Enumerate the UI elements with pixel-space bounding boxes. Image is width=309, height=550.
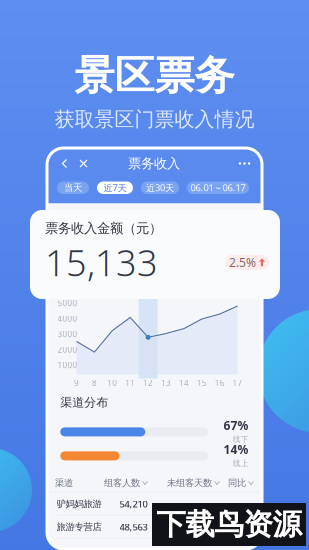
staticText: 67% xyxy=(223,417,248,433)
staticText: 10 xyxy=(107,377,117,388)
staticText: 票务收入金额（元） xyxy=(45,220,162,236)
staticText: 下载鸟资源 xyxy=(156,506,301,542)
button[interactable]: More xyxy=(237,156,251,170)
staticText: 线上 xyxy=(232,458,248,468)
staticText: 渠道分布 xyxy=(60,395,108,410)
staticText: 54,210 xyxy=(119,498,147,510)
button[interactable]: 未组客天数 xyxy=(167,477,219,489)
staticText: 9 xyxy=(74,377,79,388)
staticText: 15,133 xyxy=(45,238,158,286)
button[interactable]: Close xyxy=(76,156,90,170)
staticText: 旅游专营店 xyxy=(56,521,101,533)
button[interactable]: 同比 xyxy=(228,477,253,489)
staticText: 线下 xyxy=(232,434,248,444)
staticText: 14% xyxy=(223,441,248,457)
staticText: 11 xyxy=(125,377,135,388)
button[interactable]: 驴妈妈旅游 xyxy=(48,492,260,515)
staticText: 2.5% xyxy=(229,254,256,270)
staticText: 13 xyxy=(161,377,171,388)
button[interactable]: Back xyxy=(57,156,71,170)
staticText: 驴妈妈旅游 xyxy=(56,498,101,510)
staticText: 15 xyxy=(197,377,207,388)
staticText: 5000 xyxy=(57,298,77,308)
staticText: 获取景区门票收入情况 xyxy=(54,107,254,132)
button[interactable]: 近30天 xyxy=(141,181,179,194)
staticText: 景区票务 xyxy=(74,51,234,100)
staticText: 未组客天数 xyxy=(167,477,212,489)
staticText: 1000 xyxy=(57,360,77,370)
staticText: 3000 xyxy=(57,329,77,339)
staticText: 4000 xyxy=(57,313,77,324)
button[interactable]: 近7天 xyxy=(97,181,133,194)
staticText: 近30天 xyxy=(146,182,174,194)
staticText: 06.01 ~ 06.17 xyxy=(190,182,245,194)
staticText: 17 xyxy=(233,377,243,388)
staticText: 12 xyxy=(143,377,153,388)
staticText: 48,563 xyxy=(119,521,147,533)
staticText: 近7天 xyxy=(103,182,126,194)
staticText: 当天 xyxy=(64,182,82,193)
staticText: 16 xyxy=(215,377,225,388)
staticText: 2000 xyxy=(57,344,77,355)
staticText: 票务收入 xyxy=(128,155,180,172)
button[interactable]: 旅游专营店 xyxy=(48,515,260,538)
button[interactable]: 06.01 ~ 06.17 xyxy=(187,181,249,194)
staticText: 渠道 xyxy=(55,477,73,489)
button[interactable]: 组客人数 xyxy=(104,477,147,489)
staticText: 14 xyxy=(179,377,189,388)
staticText: 同比 xyxy=(228,477,246,489)
button[interactable]: 当天 xyxy=(57,181,89,194)
staticText: 组客人数 xyxy=(104,477,140,489)
staticText: 8 xyxy=(92,377,97,388)
